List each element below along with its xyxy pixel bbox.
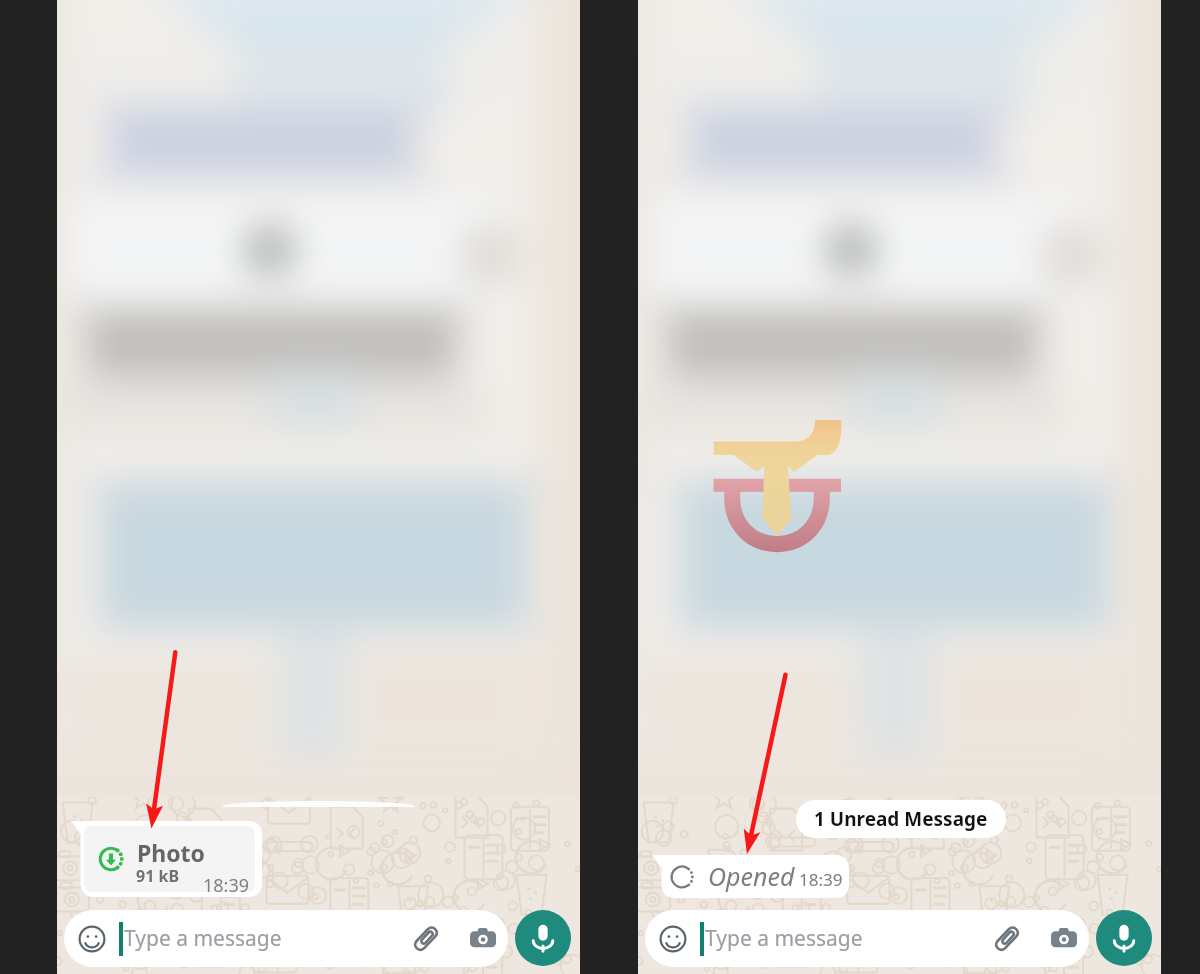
staticText: Photo bbox=[137, 837, 205, 868]
other: Camera bbox=[1051, 926, 1077, 952]
other: Camera bbox=[470, 926, 496, 952]
staticText: 18:39 bbox=[203, 873, 250, 892]
staticText: 18:39 bbox=[799, 868, 843, 891]
staticText: 91 kB bbox=[136, 865, 180, 887]
button[interactable]: Record voice message bbox=[1096, 910, 1152, 966]
other: Emoji bbox=[78, 925, 106, 953]
button[interactable]: Photo bbox=[84, 826, 255, 892]
other: Emoji bbox=[659, 925, 687, 953]
other: Attach file bbox=[993, 925, 1021, 953]
staticText: Type a message bbox=[124, 924, 282, 953]
button[interactable]: Record voice message bbox=[515, 910, 571, 966]
button[interactable]: 1 Unread Message bbox=[796, 800, 1006, 838]
staticText: 1 Unread Message bbox=[814, 806, 988, 832]
button[interactable]: Opened bbox=[652, 855, 849, 898]
other: Attach file bbox=[412, 925, 440, 953]
staticText: Type a message bbox=[705, 924, 863, 953]
staticText: Opened bbox=[708, 859, 795, 893]
button[interactable]: Emoji bbox=[645, 910, 1089, 967]
button[interactable]: Emoji bbox=[64, 910, 508, 967]
